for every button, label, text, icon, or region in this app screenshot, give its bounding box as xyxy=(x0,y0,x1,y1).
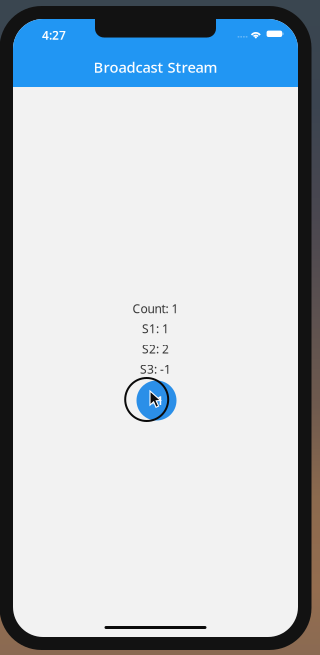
button[interactable]: +1 xyxy=(136,380,176,420)
staticText: S2: 2 xyxy=(142,341,169,357)
staticText: Count: 1 xyxy=(132,300,178,316)
staticText: 4:27 xyxy=(42,27,66,43)
staticText: Broadcast Stream xyxy=(93,57,217,77)
staticText: +1 xyxy=(149,392,163,408)
staticText: S3: -1 xyxy=(140,361,171,377)
staticText: S1: 1 xyxy=(142,321,169,337)
